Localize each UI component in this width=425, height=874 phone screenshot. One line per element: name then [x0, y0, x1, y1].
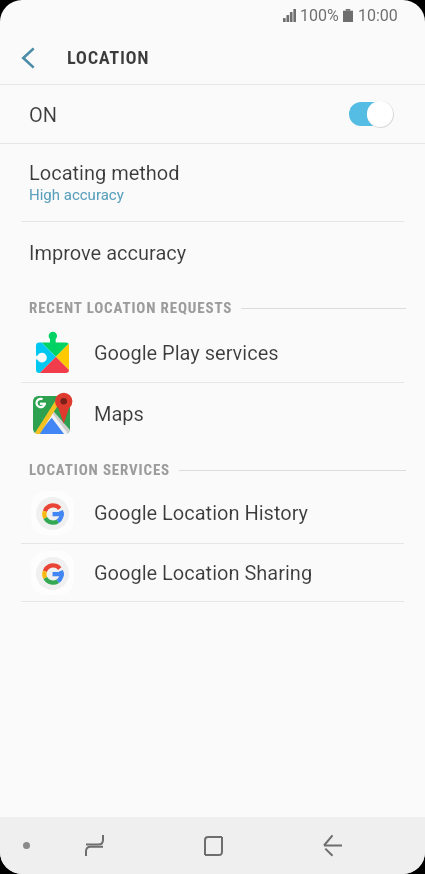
staticText: Maps — [94, 402, 144, 425]
staticText: Improve accuracy — [29, 241, 187, 264]
staticText: High accuracy — [29, 186, 124, 204]
button[interactable]: Google Play services — [0, 322, 425, 382]
staticText: 10:00 — [358, 6, 398, 25]
staticText: Google Play services — [94, 341, 279, 364]
staticText: LOCATION — [67, 47, 150, 69]
staticText: Google Location History — [94, 501, 309, 524]
button[interactable]: Maps — [0, 383, 425, 443]
staticText: RECENT LOCATION REQUESTS — [29, 299, 233, 317]
staticText: Locating method — [29, 161, 180, 184]
button[interactable]: ON — [0, 85, 425, 143]
button[interactable]: Improve accuracy — [0, 222, 425, 283]
button[interactable]: Locating method — [0, 144, 425, 221]
button[interactable]: Recent apps — [68, 817, 120, 874]
button[interactable]: Home — [187, 817, 239, 874]
button[interactable]: Google Location Sharing — [0, 544, 425, 601]
staticText: ON — [29, 103, 58, 126]
button[interactable]: Back — [306, 817, 358, 874]
button[interactable]: Navigate up — [0, 32, 56, 84]
staticText: 100% — [300, 6, 339, 25]
button[interactable]: Google Location History — [0, 482, 425, 543]
staticText: LOCATION SERVICES — [29, 461, 171, 479]
staticText: Google Location Sharing — [94, 561, 313, 584]
